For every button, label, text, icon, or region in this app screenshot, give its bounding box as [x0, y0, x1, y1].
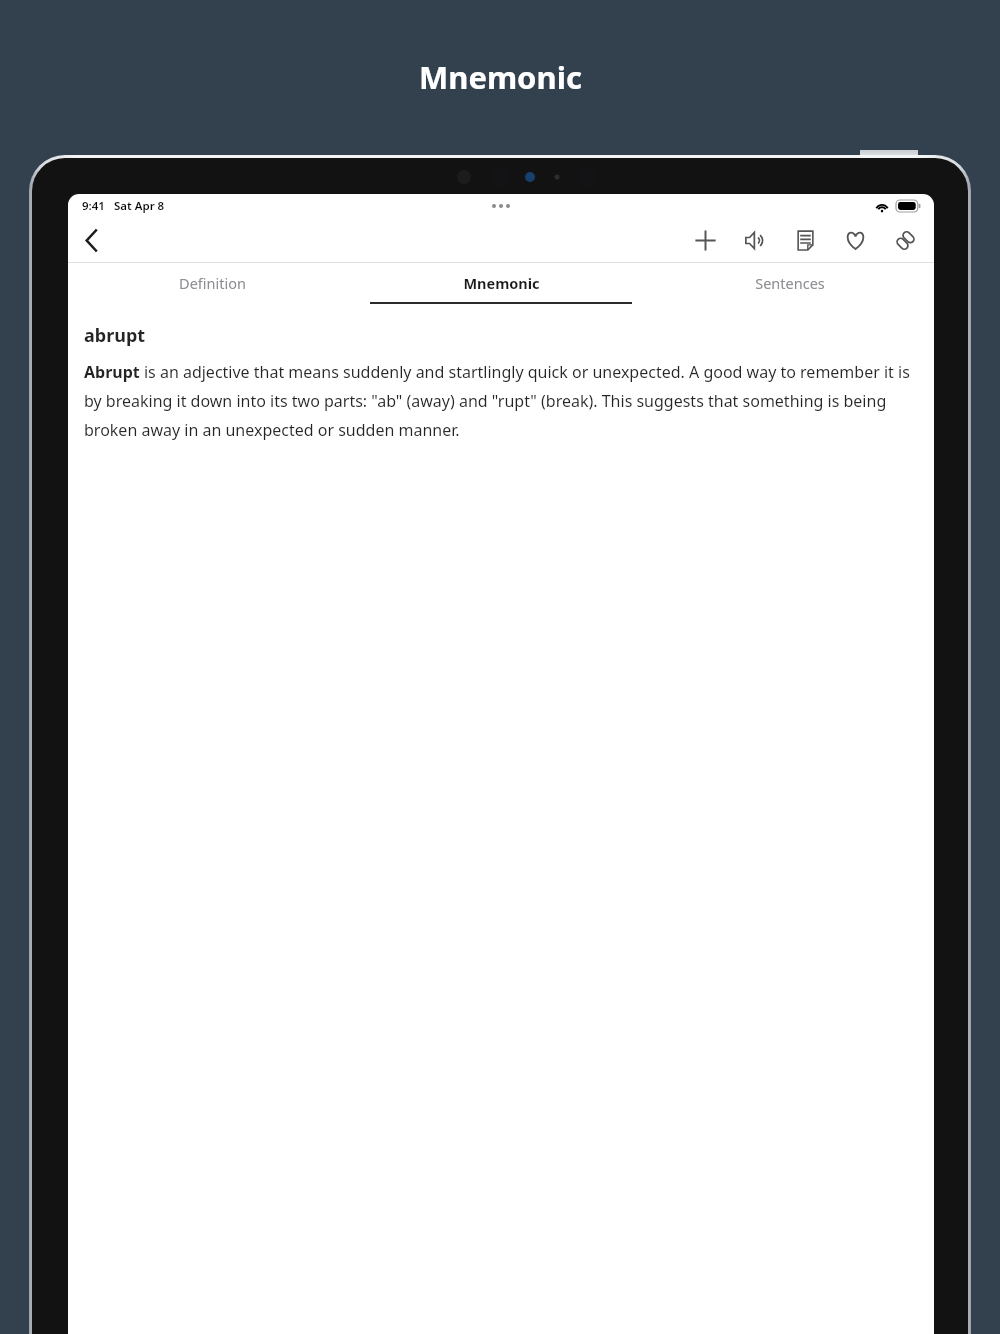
staticText: abrupt — [84, 323, 146, 348]
button[interactable]: Favorite — [838, 223, 872, 257]
staticText: Sat Apr 8 — [114, 198, 165, 214]
staticText: 9:41 — [82, 198, 105, 214]
staticText: Mnemonic — [463, 273, 540, 293]
button[interactable]: Notes — [788, 223, 822, 257]
button[interactable]: Sentences — [645, 263, 934, 308]
staticText: Sentences — [755, 273, 825, 293]
staticText: Definition — [179, 273, 246, 293]
button[interactable]: Definition — [68, 263, 356, 308]
button[interactable]: Back — [72, 220, 112, 260]
button[interactable]: Pronounce — [738, 223, 772, 257]
staticText: Mnemonic — [419, 56, 582, 98]
button[interactable]: Mnemonic — [356, 263, 645, 308]
button[interactable]: Copy link — [888, 223, 922, 257]
staticText: Abrupt is an adjective that means sudden… — [84, 361, 918, 440]
button[interactable]: Add — [688, 223, 722, 257]
